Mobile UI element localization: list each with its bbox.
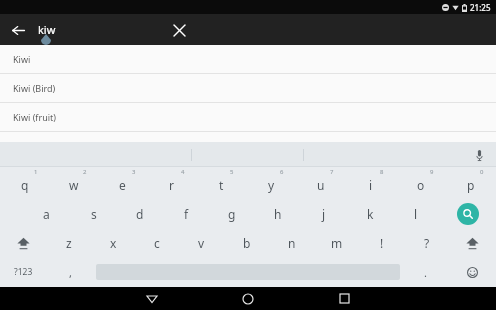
button[interactable]: Recent apps — [332, 287, 356, 310]
button[interactable]: Shift — [449, 229, 496, 257]
staticText: 8 — [380, 168, 384, 176]
button[interactable]: w — [49, 167, 98, 198]
button[interactable]: ! — [359, 229, 404, 257]
staticText: 9 — [430, 168, 434, 176]
staticText: ? — [424, 235, 430, 251]
staticText: q — [21, 177, 29, 193]
staticText: a — [43, 206, 50, 222]
button[interactable]: Kiwi (Bird) — [0, 74, 496, 103]
staticText: h — [274, 206, 282, 222]
button[interactable]: , — [47, 257, 94, 287]
button[interactable]: h — [255, 198, 301, 229]
button[interactable]: Back — [6, 18, 30, 42]
button[interactable]: m — [314, 229, 359, 257]
button[interactable]: u — [296, 167, 346, 198]
button[interactable]: v — [179, 229, 224, 257]
button[interactable]: Voice input — [470, 146, 488, 164]
staticText: z — [66, 235, 72, 251]
button[interactable]: Search — [439, 198, 496, 229]
button[interactable]: c — [135, 229, 179, 257]
staticText: j — [322, 206, 326, 222]
button[interactable]: g — [209, 198, 255, 229]
staticText: kiw — [38, 22, 56, 37]
staticText: ! — [380, 235, 384, 251]
staticText: e — [119, 177, 126, 193]
staticText: Kiwi (Bird) — [13, 82, 56, 94]
staticText: 0 — [480, 168, 484, 176]
staticText: Kiwi — [13, 53, 31, 65]
button[interactable]: i — [346, 167, 396, 198]
staticText: 6 — [280, 168, 284, 176]
staticText: x — [110, 235, 117, 251]
button[interactable]: l — [393, 198, 439, 229]
button[interactable]: z — [47, 229, 91, 257]
button[interactable]: ? — [404, 229, 449, 257]
button[interactable]: y — [246, 167, 296, 198]
staticText: 7 — [330, 168, 334, 176]
staticText: b — [243, 235, 251, 251]
button[interactable]: Clear query — [167, 18, 191, 42]
staticText: 1 — [34, 168, 38, 176]
button[interactable]: Back — [140, 287, 164, 310]
button[interactable]: ?123 — [0, 257, 47, 287]
button[interactable]: . — [402, 257, 449, 287]
button[interactable]: r — [147, 167, 196, 198]
staticText: 5 — [230, 168, 234, 176]
staticText: 4 — [181, 168, 185, 176]
staticText: . — [424, 265, 427, 280]
button[interactable]: Home — [236, 287, 260, 310]
staticText: r — [169, 177, 174, 193]
button[interactable]: p — [446, 167, 496, 198]
staticText: k — [367, 206, 374, 222]
button[interactable]: Shift — [0, 229, 47, 257]
staticText: , — [69, 265, 72, 280]
staticText: p — [467, 177, 475, 193]
button[interactable]: o — [396, 167, 446, 198]
staticText: t — [219, 177, 224, 193]
staticText: f — [184, 206, 189, 222]
button[interactable]: b — [224, 229, 269, 257]
staticText: 2 — [83, 168, 87, 176]
staticText: Kiwi (fruit) — [13, 111, 56, 123]
button[interactable]: t — [196, 167, 246, 198]
button[interactable]: Kiwi (fruit) — [0, 103, 496, 132]
button[interactable]: q — [0, 167, 49, 198]
staticText: w — [69, 177, 79, 193]
staticText: s — [91, 206, 97, 222]
button[interactable]: Kiwi — [0, 45, 496, 74]
staticText: u — [317, 177, 325, 193]
button[interactable]: e — [98, 167, 147, 198]
staticText: g — [228, 206, 236, 222]
staticText: y — [268, 177, 275, 193]
button[interactable]: k — [347, 198, 393, 229]
button[interactable]: f — [163, 198, 209, 229]
staticText: v — [198, 235, 205, 251]
button[interactable]: n — [269, 229, 314, 257]
button[interactable]: j — [301, 198, 347, 229]
button[interactable]: d — [117, 198, 163, 229]
staticText: i — [369, 177, 373, 193]
staticText: c — [154, 235, 160, 251]
staticText: n — [288, 235, 296, 251]
button[interactable]: Emoji — [449, 257, 496, 287]
staticText: 3 — [132, 168, 136, 176]
button[interactable]: s — [70, 198, 117, 229]
staticText: l — [414, 206, 418, 222]
button[interactable]: x — [91, 229, 135, 257]
staticText: ?123 — [14, 266, 33, 278]
button[interactable]: a — [23, 198, 70, 229]
staticText: 21:25 — [470, 2, 491, 13]
staticText: d — [136, 206, 144, 222]
staticText: m — [331, 235, 343, 251]
staticText: o — [417, 177, 425, 193]
